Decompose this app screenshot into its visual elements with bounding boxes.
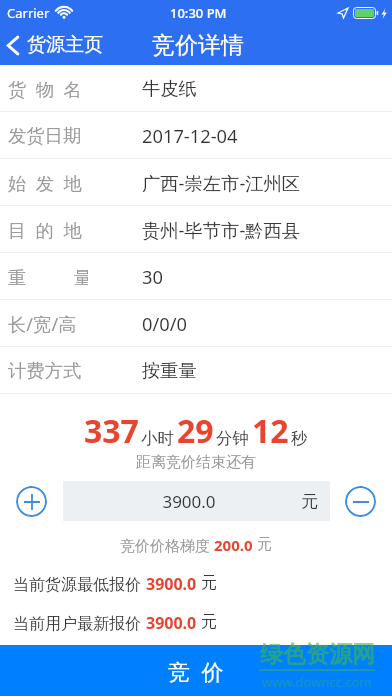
button[interactable]: Back to 货源主页 bbox=[0, 27, 113, 63]
staticText: 绿色资源网 bbox=[260, 640, 375, 669]
staticText: 200.0 bbox=[214, 535, 257, 555]
staticText: Carrier bbox=[7, 4, 50, 22]
staticText: 目 的 地 bbox=[8, 217, 82, 242]
staticText: 3900.0 bbox=[146, 573, 201, 593]
staticText: 337 bbox=[84, 409, 139, 453]
staticText: 距离竞价结束还有 bbox=[136, 453, 256, 470]
staticText: 当前货源最低报价 bbox=[13, 573, 146, 593]
staticText: 29 bbox=[177, 409, 214, 453]
staticText: 竞价详情 bbox=[152, 31, 244, 60]
staticText: 3900.0 bbox=[146, 612, 201, 632]
staticText: 元 bbox=[201, 612, 217, 632]
button[interactable]: 竞 价 bbox=[0, 645, 392, 696]
staticText: 元 bbox=[301, 491, 318, 512]
staticText: 牛皮纸 bbox=[142, 77, 197, 100]
staticText: 秒 bbox=[291, 428, 308, 449]
button[interactable]: 3900.0 bbox=[77, 481, 318, 521]
staticText: 贵州-毕节市-黔西县 bbox=[142, 217, 301, 242]
staticText: 当前用户最新报价 bbox=[13, 612, 146, 632]
staticText: 计费方式 bbox=[8, 359, 82, 382]
staticText: 货源主页 bbox=[27, 33, 103, 57]
staticText: 发货日期 bbox=[8, 124, 82, 147]
staticText: 重 量 bbox=[8, 264, 88, 289]
button[interactable]: Decrease price bbox=[345, 486, 376, 517]
staticText: 2017-12-04 bbox=[142, 123, 238, 148]
staticText: 分钟 bbox=[216, 428, 249, 449]
staticText: 竞 价 bbox=[168, 656, 224, 686]
staticText: www.downcc.com bbox=[262, 673, 372, 691]
staticText: 长/宽/高 bbox=[8, 311, 77, 336]
staticText: 12 bbox=[252, 409, 289, 453]
staticText: 0/0/0 bbox=[142, 311, 188, 336]
staticText: 按重量 bbox=[142, 359, 197, 382]
staticText: 竞价价格梯度 bbox=[120, 535, 214, 555]
staticText: 广西-崇左市-江州区 bbox=[142, 170, 301, 195]
staticText: 30 bbox=[142, 264, 163, 289]
staticText: 货 物 名 bbox=[8, 76, 82, 101]
staticText: 元 bbox=[201, 573, 217, 593]
staticText: 小时 bbox=[141, 428, 174, 449]
staticText: 10:30 PM bbox=[170, 4, 227, 22]
staticText: 元 bbox=[257, 535, 272, 554]
button[interactable]: Increase price bbox=[16, 486, 47, 517]
staticText: 3900.0 bbox=[77, 490, 301, 513]
staticText: 始 发 地 bbox=[8, 170, 82, 195]
